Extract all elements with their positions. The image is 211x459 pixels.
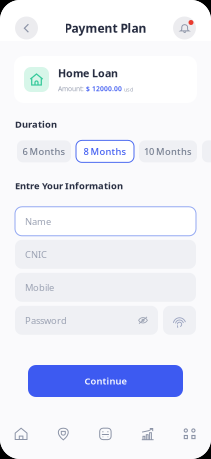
staticText: Payment Plan <box>64 20 146 36</box>
button[interactable]: Home <box>0 409 42 459</box>
button[interactable]: Back <box>15 16 38 39</box>
button[interactable]: CNIC <box>15 240 196 269</box>
staticText: Name <box>25 215 51 227</box>
staticText: Home Loan <box>58 66 118 80</box>
staticText: Amount: <box>58 84 84 93</box>
button[interactable]: Locations <box>42 409 84 459</box>
button[interactable]: 6 Months <box>17 140 71 162</box>
staticText: Mobile <box>25 281 54 293</box>
staticText: Duration <box>15 118 57 130</box>
staticText: Password <box>25 314 67 326</box>
button[interactable]: Statistics <box>127 409 169 459</box>
staticText: CNIC <box>25 248 47 260</box>
staticText: Continue <box>84 375 126 387</box>
button[interactable]: Password <box>15 306 158 335</box>
staticText: 6 Months <box>22 145 65 158</box>
button[interactable]: Name <box>15 207 196 236</box>
button[interactable]: Continue <box>28 365 183 397</box>
staticText: usd <box>124 86 133 93</box>
button[interactable]: Notifications <box>173 16 196 39</box>
staticText: $ 12000.00 <box>86 84 122 93</box>
staticText: 10 Months <box>144 145 192 158</box>
button[interactable]: 8 Months <box>76 140 134 162</box>
button[interactable]: Support <box>84 409 127 459</box>
button[interactable]: Fingerprint login <box>163 306 196 335</box>
button[interactable]: Mobile <box>15 273 196 302</box>
staticText: 8 Months <box>83 145 126 158</box>
button[interactable]: More <box>169 409 211 459</box>
staticText: Entre Your Information <box>15 179 123 192</box>
button[interactable]: 10 Months <box>139 140 197 162</box>
